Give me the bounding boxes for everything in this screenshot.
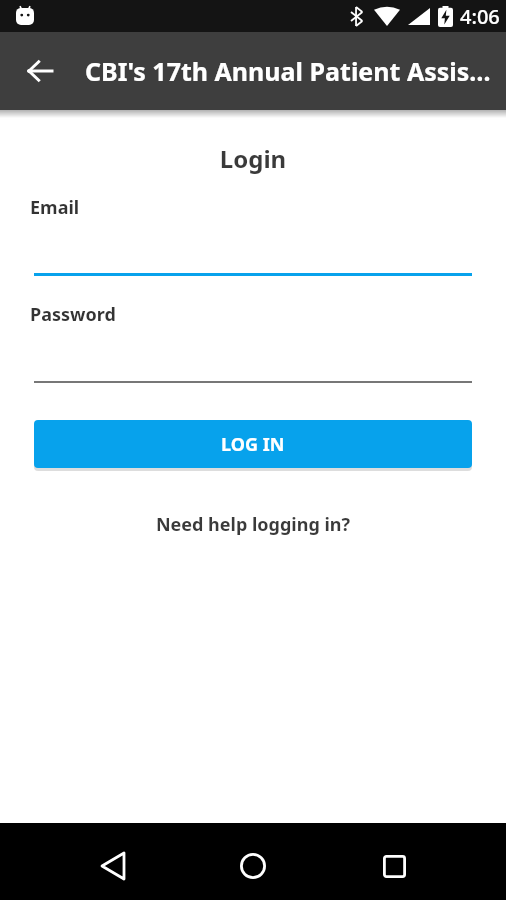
staticText: Email bbox=[30, 195, 80, 220]
button[interactable] bbox=[92, 845, 134, 887]
staticText: CBI's 17th Annual Patient Assis… bbox=[85, 54, 491, 88]
button[interactable] bbox=[373, 845, 415, 887]
staticText: Password bbox=[30, 302, 116, 327]
staticText: 4:06 bbox=[460, 3, 500, 30]
button[interactable]: LOG IN bbox=[34, 420, 472, 468]
button[interactable] bbox=[16, 32, 64, 110]
button[interactable]: Need help logging in? bbox=[0, 512, 506, 537]
button[interactable] bbox=[232, 845, 274, 887]
staticText: LOG IN bbox=[221, 432, 285, 457]
staticText: Login bbox=[0, 142, 506, 175]
